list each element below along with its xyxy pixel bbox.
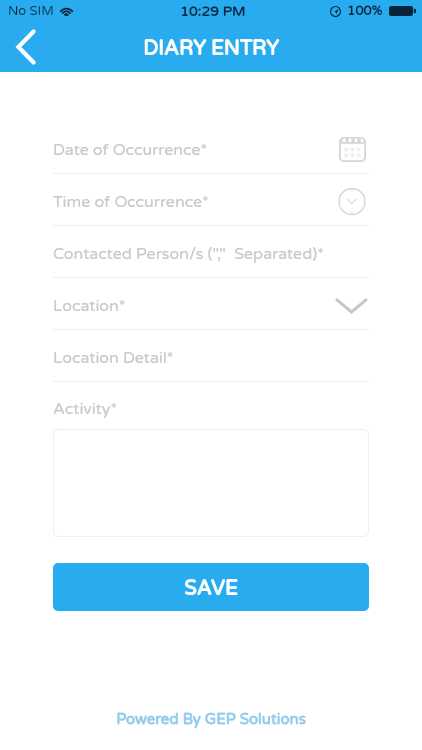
staticText: SAVE	[184, 577, 238, 601]
staticText: DIARY ENTRY	[143, 37, 279, 61]
staticText: Contacted Person/s ("," Separated)*	[53, 244, 369, 263]
staticText: Time of Occurrence*	[53, 192, 338, 211]
button[interactable]: Contacted Person/s ("," Separated)*	[53, 226, 369, 278]
button[interactable]: Back	[0, 22, 51, 72]
button[interactable]: Time of Occurrence*	[53, 174, 369, 226]
staticText: Location*	[53, 296, 336, 315]
button[interactable]: Date of Occurrence*	[53, 122, 369, 174]
staticText: 100%	[347, 3, 383, 19]
staticText: Activity*	[53, 399, 118, 418]
staticText: Date of Occurrence*	[53, 140, 339, 159]
staticText: No SIM	[8, 3, 54, 19]
staticText: Location Detail*	[53, 348, 369, 367]
staticText: 10:29 PM	[180, 3, 246, 20]
button[interactable]: Location Detail*	[53, 330, 369, 382]
button[interactable]: SAVE	[53, 563, 369, 611]
staticText: Powered By GEP Solutions	[53, 710, 369, 728]
button[interactable]: Location*	[53, 278, 369, 330]
